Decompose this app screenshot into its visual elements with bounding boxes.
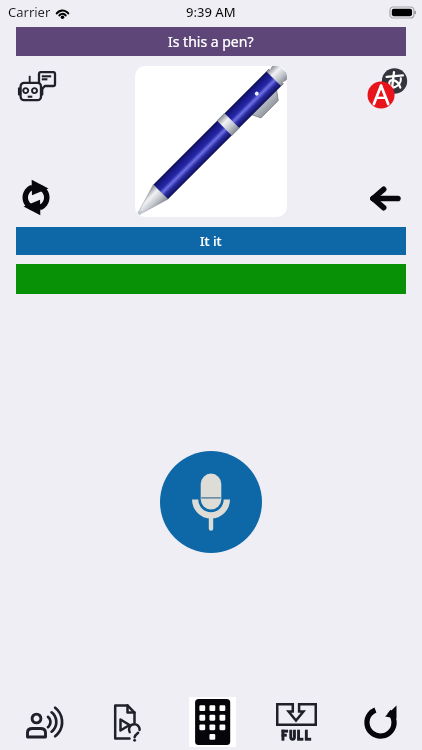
button[interactable]: Back <box>363 180 407 216</box>
button[interactable]: Pen image <box>135 66 287 217</box>
button[interactable]: Chatbot <box>11 63 63 108</box>
button[interactable]: It it <box>16 227 406 255</box>
button[interactable]: Microphone <box>160 451 262 553</box>
staticText: Carrier <box>8 3 51 21</box>
button[interactable]: Media help <box>85 694 170 750</box>
staticText: 9:39 AM <box>186 3 236 21</box>
staticText: Is this a pen? <box>168 32 254 51</box>
button[interactable]: Swap languages <box>12 175 60 219</box>
staticText: It it <box>200 232 222 250</box>
button[interactable]: Dialpad <box>170 694 254 750</box>
button[interactable]: Refresh <box>338 694 422 750</box>
button[interactable]: Speak <box>0 694 85 750</box>
button[interactable]: Translate <box>360 61 408 109</box>
button[interactable]: Full screen <box>254 694 338 750</box>
button[interactable]: Is this a pen? <box>16 27 406 56</box>
